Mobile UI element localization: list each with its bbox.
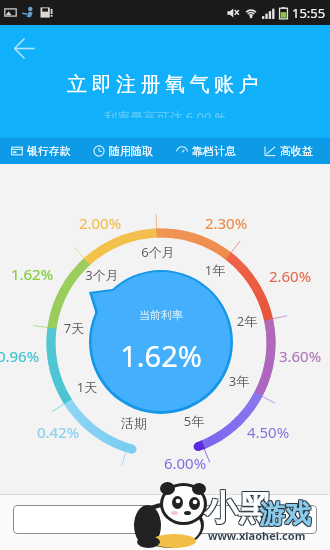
staticText: 游戏 bbox=[260, 497, 312, 530]
button[interactable]: 靠档计息 bbox=[164, 138, 247, 164]
staticText: 4.50% bbox=[208, 422, 328, 442]
staticText: 游戏 bbox=[259, 497, 311, 530]
staticText: 靠档计息 bbox=[192, 144, 236, 158]
staticText: www.xiaohei.com bbox=[208, 528, 306, 543]
staticText: 小黑 bbox=[203, 488, 271, 531]
staticText: 小黑 bbox=[205, 486, 273, 529]
staticText: 0.42% bbox=[0, 422, 118, 442]
button[interactable]: Back bbox=[6, 30, 43, 67]
staticText: 游戏 bbox=[258, 497, 310, 530]
staticText: 小黑 bbox=[203, 487, 271, 530]
staticText: 2.30% bbox=[166, 213, 286, 233]
staticText: 随用随取 bbox=[109, 144, 153, 158]
staticText: 利率最高可达 6.00 % bbox=[0, 110, 330, 118]
staticText: 小黑 bbox=[204, 486, 272, 529]
staticText: 1年 bbox=[155, 261, 275, 279]
staticText: 3个月 bbox=[42, 266, 162, 284]
staticText: 2.60% bbox=[230, 266, 330, 286]
staticText: 银行存款 bbox=[27, 144, 71, 158]
staticText: 游戏 bbox=[258, 499, 310, 532]
staticText: 5年 bbox=[134, 412, 254, 430]
staticText: 6.00% bbox=[125, 453, 245, 473]
staticText: 3年 bbox=[179, 372, 299, 390]
staticText: 高收益 bbox=[280, 144, 313, 158]
staticText: 1.62% bbox=[0, 264, 92, 284]
staticText: 0.96% bbox=[0, 346, 78, 366]
staticText: 7天 bbox=[14, 319, 134, 337]
staticText: 立即注册氧气账户 bbox=[0, 72, 330, 97]
staticText: 小黑 bbox=[205, 488, 273, 531]
staticText: 2年 bbox=[187, 312, 307, 330]
staticText: 活期 bbox=[74, 415, 194, 431]
staticText: 游戏 bbox=[260, 498, 312, 531]
staticText: 游戏 bbox=[259, 498, 311, 531]
staticText: 小黑 bbox=[204, 488, 272, 531]
staticText: 3.60% bbox=[240, 346, 330, 366]
staticText: 2.00% bbox=[40, 213, 160, 233]
staticText: 游戏 bbox=[259, 499, 311, 532]
button[interactable]: 随用随取 bbox=[82, 138, 164, 164]
staticText: 游戏 bbox=[258, 498, 310, 531]
staticText: 1天 bbox=[27, 378, 147, 396]
staticText: 6个月 bbox=[98, 243, 218, 261]
staticText: 游戏 bbox=[260, 499, 312, 532]
staticText: 小黑 bbox=[203, 486, 271, 529]
button[interactable] bbox=[13, 505, 317, 534]
staticText: 1.62% bbox=[101, 336, 221, 375]
staticText: 当前利率 bbox=[101, 308, 221, 322]
staticText: 小黑 bbox=[205, 487, 273, 530]
staticText: 小黑 bbox=[204, 487, 272, 530]
button[interactable]: 高收益 bbox=[247, 138, 330, 164]
button[interactable]: 银行存款 bbox=[0, 138, 82, 164]
staticText: 15:55 bbox=[292, 4, 326, 22]
